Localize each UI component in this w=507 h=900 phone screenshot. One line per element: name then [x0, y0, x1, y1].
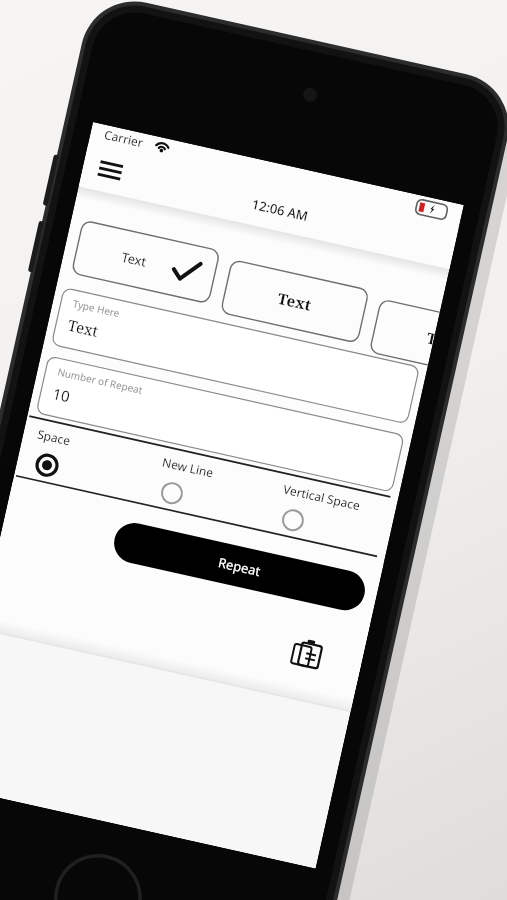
button[interactable]: Text style 3 — [373, 313, 507, 367]
button[interactable]: Text style 1 — [75, 234, 215, 288]
button[interactable]: Space — [23, 428, 147, 490]
button[interactable]: Text style 2 — [224, 274, 364, 328]
button[interactable]: New Line — [146, 455, 270, 517]
button[interactable]: Vertical Space — [269, 483, 393, 545]
button[interactable]: Type Here — [53, 326, 417, 384]
button[interactable]: Menu — [101, 164, 133, 192]
button[interactable]: Copy to clipboard — [289, 634, 331, 676]
button[interactable]: Number of Repeat — [38, 395, 402, 453]
button[interactable]: Repeat — [111, 546, 367, 586]
